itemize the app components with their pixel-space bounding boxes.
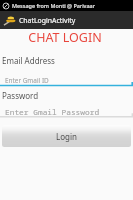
other: App icon xyxy=(2,13,16,27)
button[interactable]: Enter Gmail Password xyxy=(0,101,133,118)
staticText: Enter Gmail Password xyxy=(5,107,100,118)
staticText: Email Address xyxy=(2,55,55,66)
staticText: ChatLoginActivity xyxy=(19,16,76,25)
staticText: Message from Monti @ Parivaar xyxy=(12,2,96,9)
button[interactable]: Enter Gmail ID xyxy=(0,68,133,87)
staticText: Password xyxy=(2,90,39,101)
button[interactable]: Login xyxy=(2,125,131,147)
staticText: CHAT LOGIN xyxy=(0,29,130,46)
staticText: Enter Gmail ID xyxy=(5,76,49,85)
staticText: Login xyxy=(56,131,77,142)
